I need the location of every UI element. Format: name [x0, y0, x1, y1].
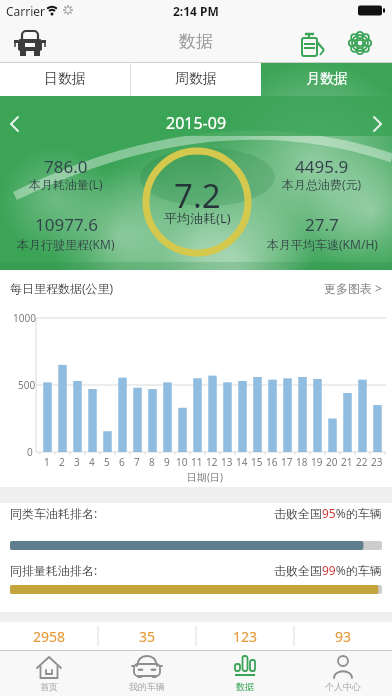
staticText: 2 — [59, 455, 65, 469]
staticText: 日期(日) — [187, 470, 223, 484]
staticText: 10977.6 — [35, 213, 98, 236]
staticText: 93 — [335, 627, 352, 646]
staticText: 6 — [119, 455, 125, 469]
staticText: 每日里程数据(公里) — [10, 280, 114, 296]
staticText: 同类车油耗排名: — [10, 505, 98, 521]
staticText: 3 — [74, 455, 80, 469]
staticText: 9 — [164, 455, 170, 469]
staticText: 击败全国99%的车辆 — [274, 562, 382, 578]
staticText: 更多图表 > — [324, 280, 382, 296]
staticText: 1 — [44, 455, 50, 469]
staticText: 35 — [139, 627, 156, 646]
staticText: 500 — [18, 378, 36, 392]
staticText: 21 — [341, 455, 353, 469]
staticText: 786.0 — [44, 155, 88, 178]
staticText: 个人中心 — [325, 681, 361, 692]
staticText: Carrier — [6, 3, 46, 19]
staticText: 16 — [266, 455, 278, 469]
staticText: 0 — [27, 445, 33, 459]
staticText: 本月平均车速(KM/H) — [267, 236, 378, 252]
staticText: 5 — [104, 455, 110, 469]
staticText: 7.2 — [174, 173, 221, 218]
staticText: 22 — [356, 455, 368, 469]
staticText: 同排量耗油排名: — [10, 562, 98, 578]
staticText: 13 — [221, 455, 233, 469]
staticText: 7 — [134, 455, 140, 469]
staticText: 23 — [371, 455, 383, 469]
staticText: 2015-09 — [166, 112, 227, 134]
staticText: 2958 — [33, 627, 66, 646]
staticText: 27.7 — [305, 213, 339, 236]
staticText: 击败全国95%的车辆 — [274, 505, 382, 521]
staticText: 12 — [206, 455, 218, 469]
staticText: 数据 — [179, 31, 213, 52]
staticText: 月数据 — [306, 70, 348, 88]
staticText: 本月总油费(元) — [282, 176, 362, 192]
staticText: 11 — [191, 455, 203, 469]
staticText: 123 — [233, 627, 258, 646]
staticText: 1000 — [13, 311, 36, 325]
staticText: 日数据 — [44, 70, 86, 88]
staticText: 平均油耗(L) — [164, 209, 231, 227]
staticText: 17 — [281, 455, 293, 469]
staticText: 8 — [149, 455, 155, 469]
staticText: 周数据 — [175, 70, 217, 88]
staticText: 4 — [89, 455, 95, 469]
staticText: 首页 — [40, 681, 58, 692]
staticText: 14 — [236, 455, 248, 469]
staticText: 2:14 PM — [173, 3, 219, 19]
staticText: 15 — [251, 455, 263, 469]
staticText: 本月耗油量(L) — [29, 176, 103, 192]
staticText: 19 — [311, 455, 323, 469]
staticText: 20 — [326, 455, 338, 469]
staticText: 本月行驶里程(KM) — [17, 236, 115, 252]
staticText: 数据 — [236, 681, 254, 692]
staticText: 18 — [296, 455, 308, 469]
staticText: 10 — [176, 455, 188, 469]
staticText: 4495.9 — [295, 155, 349, 178]
staticText: 我的车辆 — [129, 681, 165, 692]
